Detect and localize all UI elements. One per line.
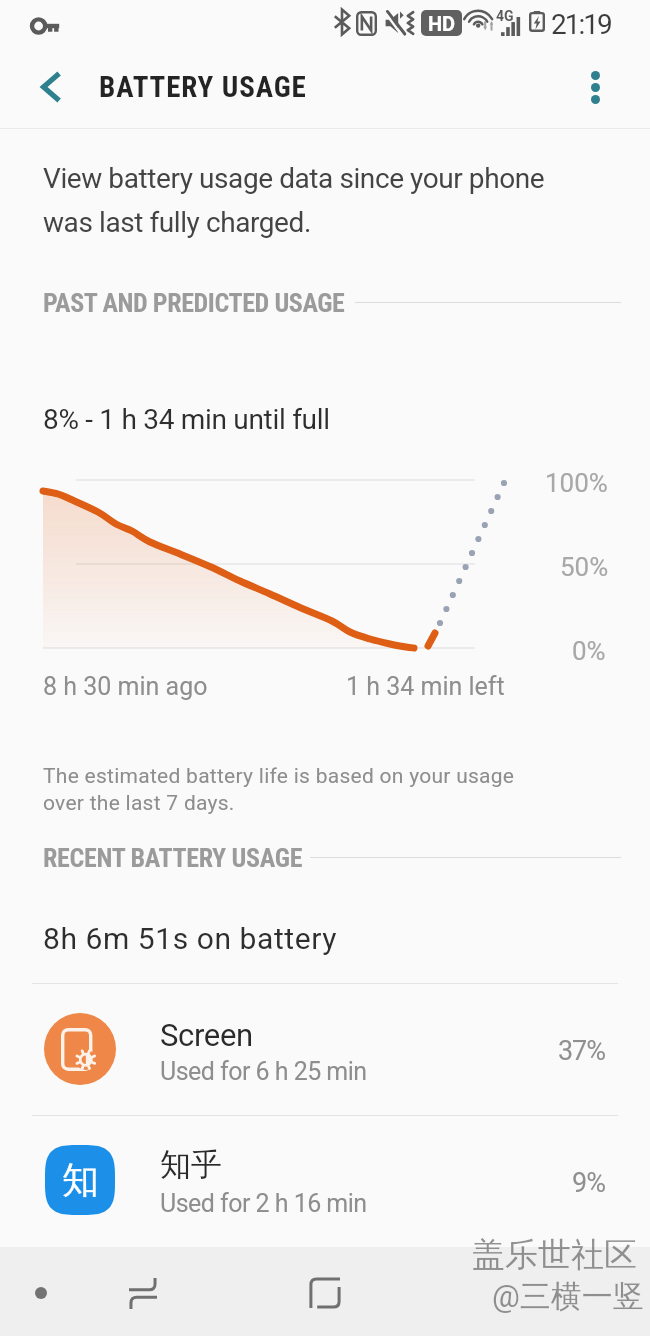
staticText: 4G bbox=[496, 8, 514, 24]
staticText: HD bbox=[428, 12, 456, 35]
button[interactable]: 知 bbox=[0, 1115, 650, 1249]
staticText: The estimated battery life is based on y… bbox=[43, 764, 515, 815]
staticText: 盖乐世社区 bbox=[472, 1234, 637, 1276]
staticText: 1 h 34 min left bbox=[346, 672, 505, 701]
staticText: 37% bbox=[0, 1035, 605, 1067]
staticText: 100% bbox=[545, 468, 608, 498]
button[interactable]: Recents bbox=[115, 1265, 171, 1321]
staticText: Screen bbox=[160, 1017, 253, 1053]
staticText: 8% - 1 h 34 min until full bbox=[43, 403, 330, 436]
staticText: Used for 6 h 25 min bbox=[160, 1057, 367, 1086]
button[interactable]: Show keyboard bbox=[13, 1265, 69, 1321]
other: VPN bbox=[30, 15, 58, 37]
button[interactable]: Home bbox=[297, 1265, 353, 1321]
staticText: PAST AND PREDICTED USAGE bbox=[43, 288, 345, 318]
staticText: 21:19 bbox=[551, 8, 611, 41]
staticText: @三横一竖 bbox=[492, 1277, 644, 1316]
staticText: Used for 2 h 16 min bbox=[160, 1189, 367, 1218]
button[interactable]: Back bbox=[22, 58, 80, 116]
staticText: 50% bbox=[560, 552, 609, 582]
staticText: 0% bbox=[572, 636, 606, 666]
button[interactable]: More options bbox=[566, 58, 624, 116]
staticText: 知乎 bbox=[160, 1145, 222, 1184]
staticText: BATTERY USAGE bbox=[99, 70, 307, 104]
staticText: 8 h 30 min ago bbox=[43, 672, 208, 701]
staticText: View battery usage data since your phone… bbox=[43, 162, 545, 239]
staticText: 8h 6m 51s on battery bbox=[43, 921, 337, 956]
staticText: 9% bbox=[0, 1167, 605, 1199]
staticText: RECENT BATTERY USAGE bbox=[43, 843, 303, 873]
staticText: 知 bbox=[62, 1157, 99, 1204]
button[interactable]: Screen bbox=[0, 983, 650, 1117]
